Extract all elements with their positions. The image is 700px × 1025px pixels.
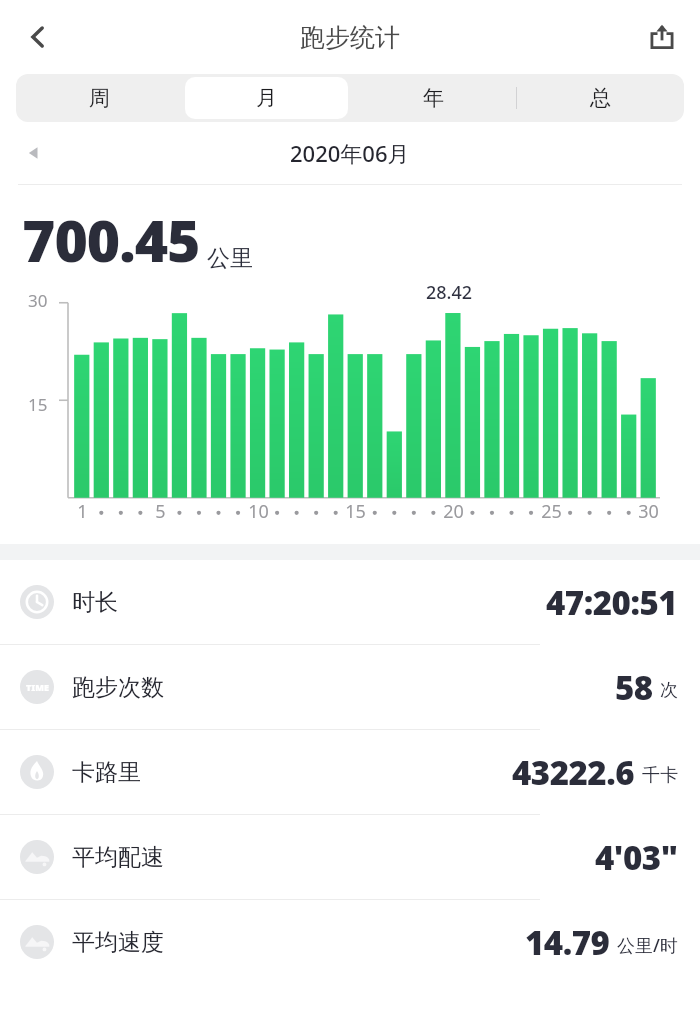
button[interactable]: Back (10, 9, 66, 65)
button[interactable]: 月 (183, 74, 350, 122)
button[interactable]: 总 (517, 74, 684, 122)
button[interactable]: 平均速度 (0, 900, 700, 984)
staticText: 5 (155, 499, 166, 524)
staticText: 月 (256, 85, 277, 111)
button[interactable]: 卡路里 (0, 730, 700, 814)
button[interactable]: 平均配速 (0, 815, 700, 899)
button[interactable]: Share (634, 9, 690, 65)
button[interactable]: 年 (350, 74, 517, 122)
staticText: 周 (89, 85, 110, 111)
staticText: 1 (77, 499, 88, 524)
staticText: 总 (590, 85, 611, 111)
staticText: 跑步次数 (72, 673, 164, 702)
staticText: 10 (248, 499, 269, 524)
staticText: 43222.6 (512, 750, 635, 795)
staticText: 4'03" (595, 835, 678, 880)
staticText: 700.45 (22, 201, 200, 279)
staticText: 14.79 (525, 920, 610, 965)
staticText: 公里 (207, 244, 253, 273)
staticText: 20 (443, 499, 464, 524)
staticText: TIME (26, 681, 49, 693)
staticText: 千卡 (642, 764, 678, 787)
staticText: 卡路里 (72, 758, 141, 787)
staticText: 2020年06月 (290, 138, 410, 168)
staticText: 跑步统计 (300, 22, 400, 53)
staticText: 28.42 (426, 280, 473, 305)
staticText: 47:20:51 (546, 580, 678, 625)
button[interactable]: 周 (16, 74, 183, 122)
staticText: 时长 (72, 588, 118, 617)
staticText: 25 (541, 499, 562, 524)
staticText: 公里/时 (617, 933, 678, 958)
staticText: 30 (28, 289, 48, 312)
staticText: 平均配速 (72, 843, 164, 872)
staticText: 30 (638, 499, 659, 524)
staticText: 15 (28, 393, 48, 416)
staticText: 15 (345, 499, 366, 524)
staticText: 58 (615, 665, 653, 710)
button[interactable]: 时长 (0, 560, 700, 644)
button[interactable]: Previous month (14, 133, 54, 173)
staticText: 次 (660, 679, 678, 702)
staticText: 年 (423, 85, 444, 111)
button[interactable]: TIME (0, 645, 700, 729)
staticText: 平均速度 (72, 928, 164, 957)
